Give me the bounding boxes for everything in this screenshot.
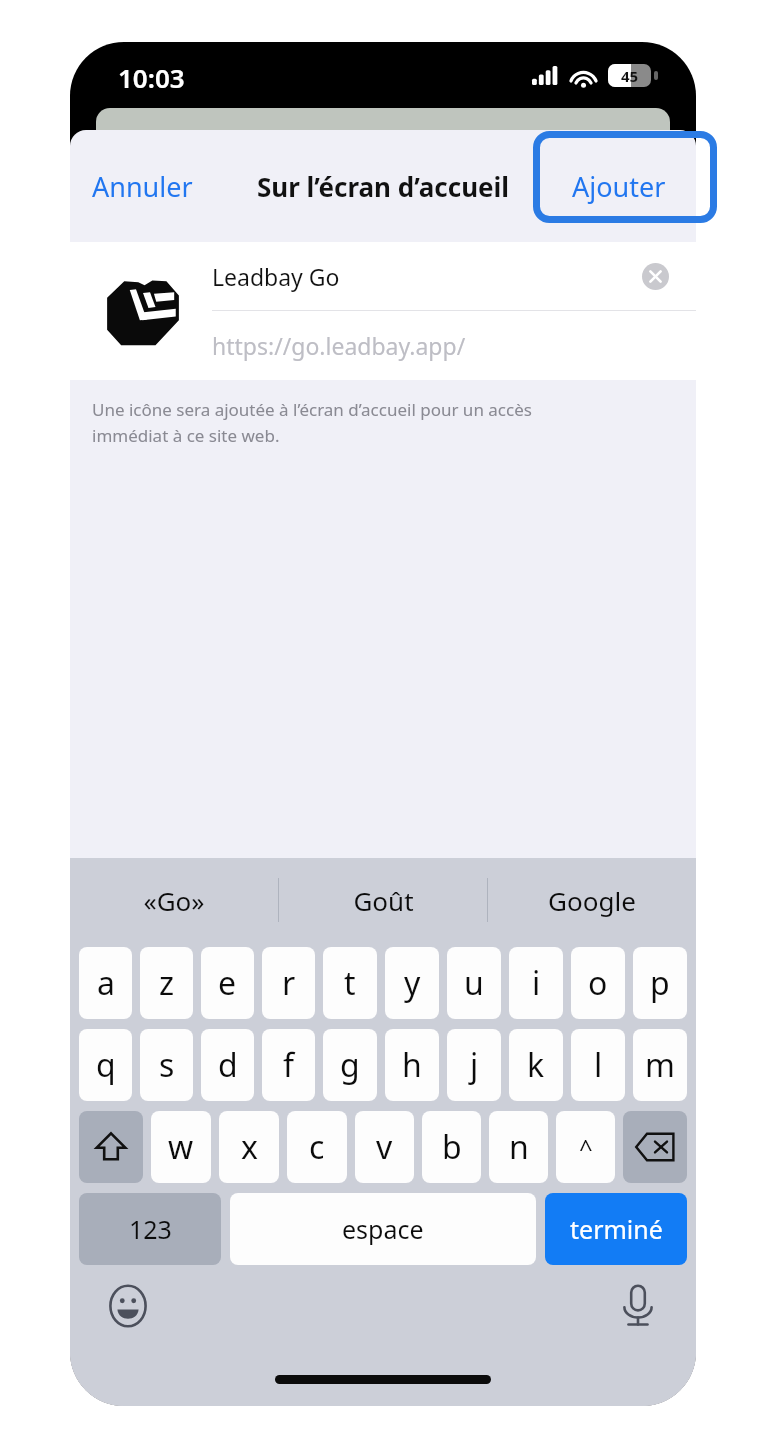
button[interactable]: z (140, 947, 193, 1019)
staticText: f (283, 1043, 295, 1087)
button[interactable]: Emoji (100, 1278, 156, 1334)
staticText: w (168, 1125, 194, 1169)
button[interactable]: u (447, 947, 501, 1019)
staticText: https://go.leadbay.app/ (212, 330, 466, 361)
button[interactable]: terminé (545, 1193, 687, 1265)
button[interactable]: Google (488, 858, 696, 942)
staticText: v (376, 1125, 393, 1169)
staticText: l (594, 1043, 603, 1087)
staticText: Goût (353, 883, 414, 918)
staticText: Une icône sera ajoutée à l’écran d’accue… (92, 398, 532, 447)
staticText: o (588, 961, 608, 1005)
staticText: q (96, 1043, 116, 1087)
staticText: 123 (129, 1212, 172, 1246)
staticText: 10:03 (118, 60, 185, 95)
staticText: ^ (579, 1131, 593, 1164)
staticText: «Go» (143, 883, 205, 918)
button[interactable]: h (385, 1029, 439, 1101)
staticText: n (509, 1125, 529, 1169)
button[interactable]: l (571, 1029, 625, 1101)
staticText: a (97, 961, 115, 1005)
button[interactable]: «Go» (70, 858, 278, 942)
button[interactable]: v (355, 1111, 414, 1183)
staticText: terminé (570, 1212, 663, 1246)
button[interactable]: o (571, 947, 625, 1019)
staticText: y (404, 961, 421, 1005)
button[interactable]: ^ (556, 1111, 615, 1183)
button[interactable]: f (262, 1029, 315, 1101)
button[interactable]: Ajouter (556, 158, 682, 215)
staticText: j (470, 1043, 479, 1087)
button[interactable]: b (422, 1111, 481, 1183)
button[interactable]: 123 (79, 1193, 221, 1265)
button[interactable]: c (287, 1111, 347, 1183)
staticText: x (241, 1125, 258, 1169)
button[interactable]: q (79, 1029, 132, 1101)
button[interactable]: Annuler (76, 158, 209, 215)
button[interactable]: j (447, 1029, 501, 1101)
staticText: 45 (621, 66, 639, 86)
button[interactable]: Goût (279, 858, 487, 942)
button[interactable]: espace (230, 1193, 536, 1265)
staticText: m (645, 1043, 675, 1087)
staticText: Annuler (92, 168, 193, 205)
staticText: Leadbay Go (212, 261, 636, 292)
button[interactable]: x (219, 1111, 279, 1183)
button[interactable]: s (140, 1029, 193, 1101)
staticText: h (402, 1043, 422, 1087)
button[interactable]: p (633, 947, 687, 1019)
staticText: b (442, 1125, 462, 1169)
staticText: Sur l’écran d’accueil (257, 169, 510, 204)
button[interactable]: k (509, 1029, 563, 1101)
button[interactable]: r (262, 947, 315, 1019)
button[interactable]: Effacer le texte (636, 257, 674, 295)
staticText: k (527, 1043, 545, 1087)
staticText: g (340, 1043, 360, 1087)
staticText: i (532, 961, 541, 1005)
staticText: z (159, 961, 175, 1005)
button[interactable]: d (201, 1029, 254, 1101)
button[interactable]: e (201, 947, 254, 1019)
button[interactable]: a (79, 947, 132, 1019)
staticText: p (650, 961, 670, 1005)
staticText: u (464, 961, 484, 1005)
button[interactable]: w (151, 1111, 211, 1183)
staticText: r (282, 961, 296, 1005)
staticText: t (344, 961, 356, 1005)
staticText: d (218, 1043, 238, 1087)
staticText: e (218, 961, 237, 1005)
button[interactable]: m (633, 1029, 687, 1101)
button[interactable]: t (323, 947, 377, 1019)
button[interactable]: i (509, 947, 563, 1019)
button[interactable]: Supprimer (623, 1111, 687, 1183)
button[interactable]: g (323, 1029, 377, 1101)
staticText: c (309, 1125, 325, 1169)
button[interactable]: y (385, 947, 439, 1019)
button[interactable]: Ajouter (533, 131, 717, 223)
staticText: s (159, 1043, 175, 1087)
staticText: Ajouter (572, 168, 666, 205)
staticText: espace (342, 1212, 424, 1246)
button[interactable]: Majuscule (79, 1111, 143, 1183)
button[interactable]: n (489, 1111, 548, 1183)
button[interactable]: Dictée (610, 1278, 666, 1334)
staticText: Google (548, 883, 636, 918)
